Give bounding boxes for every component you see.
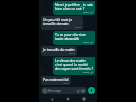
other: Attach <box>76 89 80 93</box>
button[interactable]: Tu es pour d'arriver toute abeautifs <box>53 31 95 45</box>
staticText: 20:44 <box>69 52 75 55</box>
button[interactable]: Pas vraiment lol <box>41 76 71 85</box>
staticText: Pas vraiment lol <box>43 77 69 82</box>
staticText: Je travaille du matin <box>43 47 75 52</box>
other: Camera <box>81 89 85 93</box>
button[interactable]: Un peu tôt mais je travaille demain <box>41 16 83 30</box>
button[interactable]: Back <box>49 96 55 102</box>
button[interactable]: Je travaille du matin <box>41 46 77 56</box>
button[interactable]: Merci je préfère , tu sais bien alors ce… <box>53 1 95 15</box>
staticText: 20:46 <box>83 71 89 74</box>
staticText: 20:41 <box>83 11 89 14</box>
staticText: 20:43 <box>83 41 89 44</box>
button[interactable]: Recent apps <box>81 96 87 102</box>
staticText: Merci je préfère , tu sais bien alors ce… <box>55 2 93 11</box>
staticText: Un peu tôt mais je travaille demain <box>43 17 81 26</box>
staticText: Tu es pour d'arriver toute abeautifs <box>55 32 93 41</box>
button[interactable]: Voice message <box>88 87 95 94</box>
staticText: Message <box>48 89 76 93</box>
staticText: 20:42 <box>75 26 81 29</box>
button[interactable]: Emoji <box>41 87 87 94</box>
other: Emoji <box>43 89 47 93</box>
button[interactable]: Le dimanche matin c'est quand la moitié … <box>53 57 95 75</box>
staticText: 20:47 <box>63 82 69 84</box>
button[interactable]: Home <box>65 96 71 102</box>
staticText: Le dimanche matin c'est quand la moitié … <box>55 58 93 71</box>
